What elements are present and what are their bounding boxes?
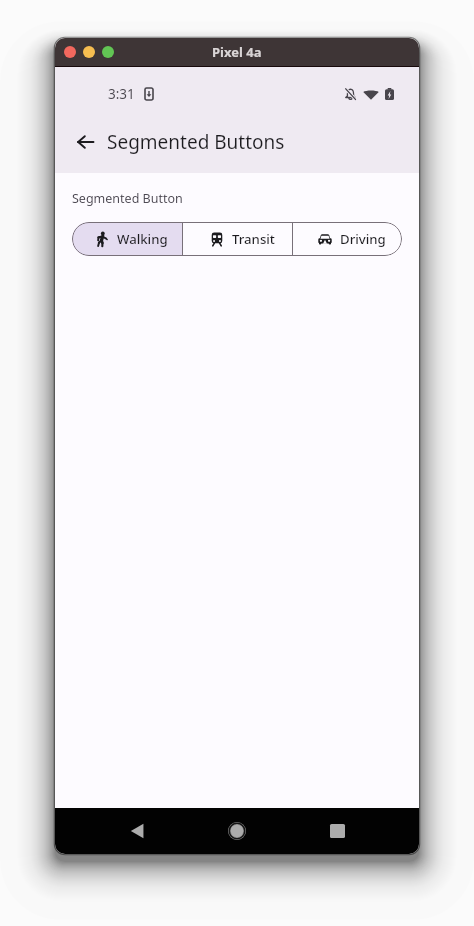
button[interactable]: Walking <box>72 222 182 256</box>
button[interactable]: Transit <box>183 222 292 256</box>
staticText: 3:31 <box>108 85 135 103</box>
staticText: Driving <box>340 230 386 248</box>
button[interactable]: Recents <box>315 809 359 853</box>
button[interactable]: Back <box>66 123 104 161</box>
staticText: Walking <box>117 230 168 248</box>
staticText: Transit <box>232 230 275 248</box>
button[interactable]: Driving <box>293 222 402 256</box>
button[interactable]: Maximise window <box>102 46 114 58</box>
button[interactable]: Minimise window <box>83 46 95 58</box>
button[interactable]: Back <box>115 809 159 853</box>
staticText: Pixel 4a <box>212 43 262 61</box>
button[interactable]: Home <box>215 809 259 853</box>
staticText: Segmented Buttons <box>107 129 285 155</box>
button[interactable]: Close window <box>64 46 76 58</box>
staticText: Segmented Button <box>72 190 183 207</box>
